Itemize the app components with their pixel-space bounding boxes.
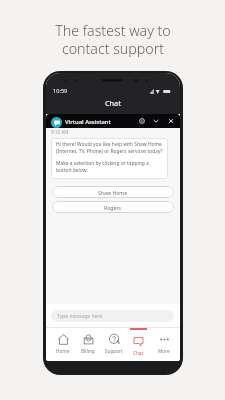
button[interactable]: Shaw Home (52, 186, 174, 198)
staticText: 10:59 (53, 87, 68, 95)
staticText: Hi there! Would you like help with Shaw … (56, 141, 163, 155)
button[interactable]: Type message here (51, 310, 174, 322)
staticText: Billing (81, 348, 95, 354)
staticText: 9:10 AM (51, 129, 69, 135)
button[interactable]: Settings (136, 114, 147, 128)
staticText: Shaw Home (98, 189, 128, 196)
button[interactable]: More (151, 327, 176, 361)
button[interactable]: Chat (126, 327, 151, 361)
staticText: The fastest way to contact support (55, 21, 171, 58)
staticText: More (158, 348, 170, 354)
button[interactable]: Minimize (150, 114, 161, 128)
button[interactable]: Rogers (52, 201, 174, 213)
staticText: Make a selection by clicking or tapping … (56, 160, 149, 174)
staticText: Virtual Assistant (65, 118, 111, 126)
button[interactable]: Support (101, 327, 126, 361)
button[interactable]: Home (50, 327, 75, 361)
staticText: Home (56, 348, 70, 354)
staticText: Rogers (104, 204, 122, 211)
staticText: Support (105, 348, 123, 354)
button[interactable]: Close (165, 114, 176, 128)
button[interactable]: Billing (75, 327, 100, 361)
staticText: Type message here (57, 313, 103, 320)
staticText: Chat (105, 98, 121, 108)
button[interactable]: Virtual Assistant (46, 114, 180, 128)
staticText: Chat (133, 350, 144, 356)
